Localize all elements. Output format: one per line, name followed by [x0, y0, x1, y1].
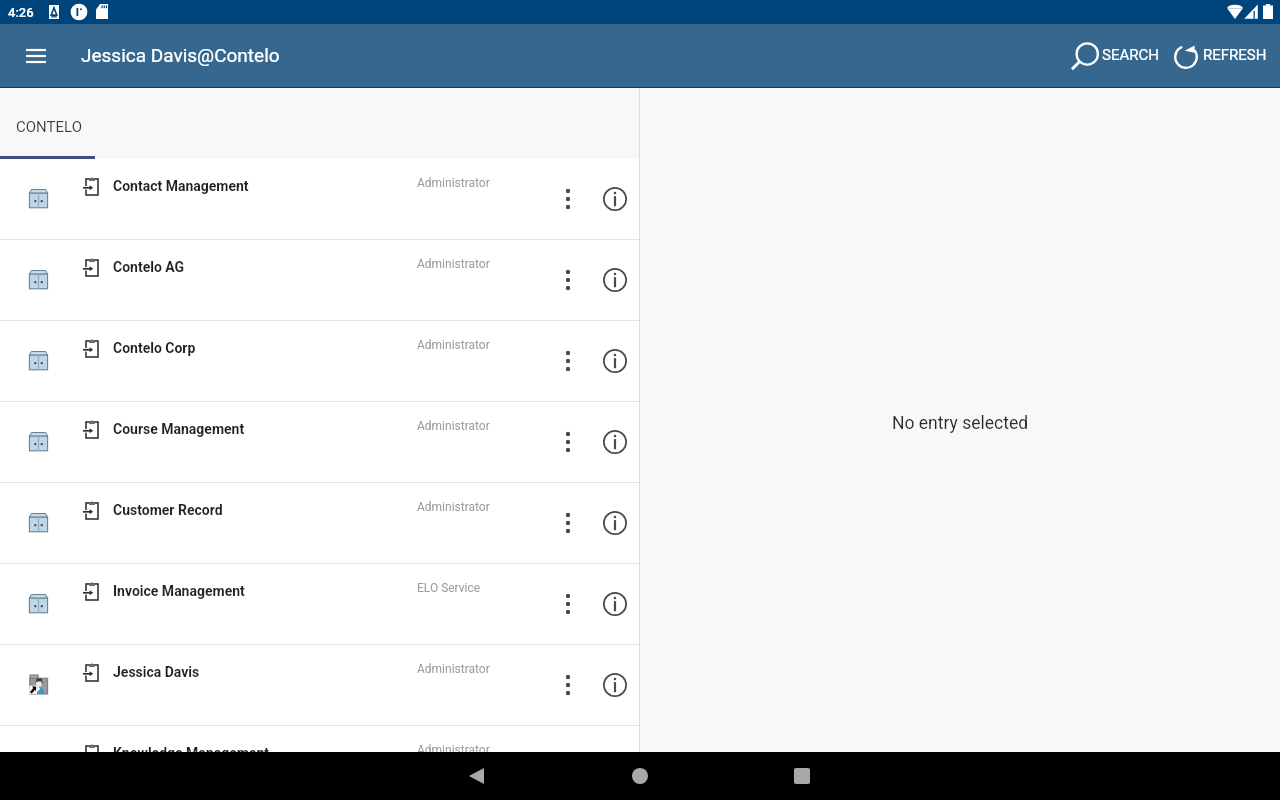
button[interactable]: More options: [548, 665, 588, 705]
button[interactable]: Course Management: [0, 402, 639, 482]
staticText: REFRESH: [1203, 46, 1267, 64]
button[interactable]: Open navigation menu: [12, 32, 60, 80]
staticText: Administrator: [417, 257, 490, 271]
staticText: Administrator: [417, 338, 490, 352]
button[interactable]: CONTELO: [0, 88, 95, 159]
staticText: Administrator: [417, 500, 490, 514]
button[interactable]: Knowledge Management: [0, 726, 639, 800]
staticText: Knowledge Management: [113, 745, 269, 761]
staticText: 4:26: [8, 5, 34, 20]
staticText: SEARCH: [1102, 46, 1159, 64]
button[interactable]: Show info: [595, 503, 635, 543]
button[interactable]: More options: [548, 260, 588, 300]
staticText: CONTELO: [16, 118, 82, 136]
button[interactable]: Show info: [595, 341, 635, 381]
staticText: Jessica Davis@Contelo: [81, 44, 280, 66]
button[interactable]: Recent apps: [778, 752, 826, 800]
button[interactable]: Contact Management: [0, 159, 639, 239]
button[interactable]: More options: [548, 179, 588, 219]
staticText: Administrator: [417, 419, 490, 433]
button[interactable]: More options: [548, 341, 588, 381]
staticText: ELO Service: [417, 581, 481, 595]
button[interactable]: Show info: [595, 260, 635, 300]
button[interactable]: Show info: [595, 665, 635, 705]
button[interactable]: More options: [548, 584, 588, 624]
button[interactable]: Jessica Davis: [0, 645, 639, 725]
staticText: Contact Management: [113, 178, 249, 194]
button[interactable]: Home: [616, 752, 664, 800]
button[interactable]: Back: [452, 752, 500, 800]
button[interactable]: Invoice Management: [0, 564, 639, 644]
button[interactable]: Customer Record: [0, 483, 639, 563]
button[interactable]: Show info: [595, 584, 635, 624]
staticText: Contelo AG: [113, 259, 185, 275]
staticText: Contelo Corp: [113, 340, 196, 356]
button[interactable]: More options: [548, 422, 588, 462]
button[interactable]: More options: [548, 746, 588, 786]
staticText: No entry selected: [892, 413, 1029, 434]
staticText: Administrator: [417, 743, 490, 757]
button[interactable]: Show info: [595, 422, 635, 462]
button[interactable]: Contelo Corp: [0, 321, 639, 401]
button[interactable]: Contelo AG: [0, 240, 639, 320]
button[interactable]: More options: [548, 503, 588, 543]
staticText: Administrator: [417, 176, 490, 190]
button[interactable]: Show info: [595, 179, 635, 219]
staticText: Invoice Management: [113, 583, 245, 599]
button[interactable]: REFRESH: [1168, 32, 1270, 80]
button[interactable]: SEARCH: [1063, 32, 1163, 80]
staticText: Jessica Davis: [113, 664, 200, 680]
button[interactable]: Show info: [595, 746, 635, 786]
staticText: Customer Record: [113, 502, 223, 518]
staticText: Administrator: [417, 662, 490, 676]
staticText: Course Management: [113, 421, 245, 437]
